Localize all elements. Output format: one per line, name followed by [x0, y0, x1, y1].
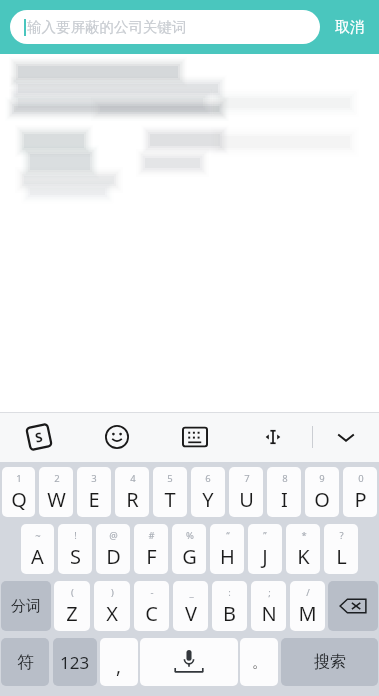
button[interactable]: @ [96, 524, 130, 574]
staticText: L [336, 543, 347, 570]
staticText: 8 [282, 472, 288, 485]
staticText: I [281, 486, 288, 513]
staticText: # [148, 529, 155, 542]
button[interactable]: Sogou input method [0, 412, 78, 462]
staticText: C [145, 600, 158, 627]
staticText: : [228, 586, 231, 599]
button[interactable]: 8 [267, 467, 301, 517]
staticText: O [314, 486, 330, 513]
staticText: D [106, 543, 121, 570]
button[interactable]: 取消 [320, 0, 379, 54]
staticText: 123 [60, 651, 90, 674]
button[interactable]: ” [248, 524, 282, 574]
button[interactable]: 9 [305, 467, 339, 517]
staticText: V [185, 600, 197, 627]
staticText: * [301, 529, 307, 542]
button[interactable]: Emoji [78, 412, 156, 462]
button[interactable]: ? [324, 524, 358, 574]
button[interactable]: 3 [77, 467, 111, 517]
staticText: 6 [205, 472, 211, 485]
button[interactable]: _ [173, 581, 208, 631]
button[interactable]: Keyboard layout [156, 412, 234, 462]
button[interactable]: - [134, 581, 169, 631]
staticText: 2 [54, 472, 60, 485]
button[interactable]: ! [58, 524, 92, 574]
staticText: E [88, 486, 100, 513]
staticText: ! [74, 529, 77, 542]
staticText: 取消 [335, 18, 365, 37]
button[interactable]: % [172, 524, 206, 574]
staticText: _ [189, 586, 194, 599]
staticText: 搜索 [314, 652, 346, 672]
staticText: S [33, 427, 45, 447]
button[interactable]: 分词 [1, 581, 51, 631]
staticText: P [354, 486, 367, 513]
button[interactable]: 123 [53, 638, 97, 686]
button[interactable]: Move cursor [234, 412, 312, 462]
staticText: / [306, 586, 310, 599]
staticText: Z [66, 600, 78, 627]
button[interactable]: 4 [115, 467, 149, 517]
staticText: J [262, 543, 268, 570]
staticText: X [106, 600, 118, 627]
staticText: N [261, 600, 277, 627]
button[interactable]: 0 [343, 467, 377, 517]
staticText: 0 [358, 472, 364, 485]
staticText: 输入要屏蔽的公司关键词 [27, 18, 187, 36]
button[interactable]: ) [94, 581, 130, 631]
staticText: ) [111, 586, 114, 599]
button[interactable]: 符 [1, 638, 49, 686]
staticText: F [146, 543, 157, 570]
button[interactable]: / [290, 581, 325, 631]
staticText: S [70, 543, 81, 570]
button[interactable]: Hide keyboard [313, 412, 379, 462]
staticText: T [164, 486, 176, 513]
staticText: @ [109, 529, 118, 542]
staticText: 符 [17, 652, 34, 673]
button[interactable]: 搜索 [281, 638, 378, 686]
staticText: Y [202, 486, 214, 513]
button[interactable]: 1 [2, 467, 35, 517]
button[interactable]: Backspace [328, 581, 378, 631]
staticText: 。 [252, 653, 267, 672]
staticText: Q [11, 486, 27, 513]
staticText: % [186, 529, 194, 542]
staticText: , [116, 653, 122, 679]
staticText: B [223, 600, 236, 627]
button[interactable]: 5 [153, 467, 187, 517]
staticText: M [298, 600, 317, 627]
staticText: ? [339, 529, 344, 542]
staticText: 1 [16, 472, 22, 485]
staticText: 9 [319, 472, 325, 485]
button[interactable]: ~ [21, 524, 54, 574]
button[interactable]: * [286, 524, 320, 574]
staticText: ” [263, 529, 267, 542]
button[interactable]: 6 [191, 467, 225, 517]
staticText: H [220, 543, 235, 570]
button[interactable]: “ [210, 524, 244, 574]
button[interactable]: , [100, 638, 138, 686]
button[interactable]: # [134, 524, 168, 574]
button[interactable]: Space [140, 638, 238, 686]
button[interactable]: 输入要屏蔽的公司关键词 [10, 10, 320, 44]
staticText: U [239, 486, 254, 513]
staticText: K [297, 543, 310, 570]
button[interactable]: 2 [39, 467, 73, 517]
staticText: 3 [91, 472, 97, 485]
staticText: 7 [244, 472, 250, 485]
button[interactable]: : [212, 581, 247, 631]
button[interactable]: 7 [229, 467, 263, 517]
staticText: “ [226, 529, 230, 542]
staticText: - [150, 586, 154, 599]
button[interactable]: ( [54, 581, 90, 631]
staticText: W [47, 486, 66, 513]
staticText: A [31, 543, 44, 570]
staticText: ( [71, 586, 74, 599]
staticText: ~ [35, 529, 41, 542]
staticText: 5 [167, 472, 173, 485]
staticText: 4 [130, 472, 136, 485]
button[interactable]: ; [251, 581, 286, 631]
button[interactable]: 。 [240, 638, 278, 686]
staticText: ; [268, 586, 271, 599]
staticText: 分词 [11, 597, 41, 616]
